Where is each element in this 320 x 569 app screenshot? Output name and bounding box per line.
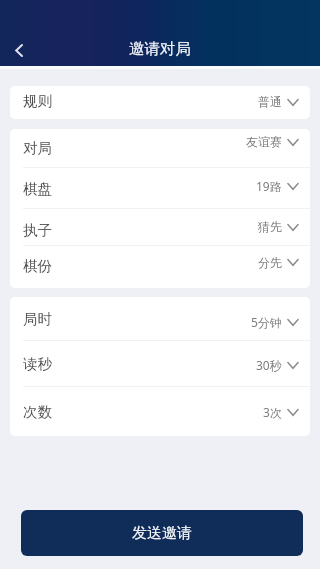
staticText: 棋份 — [23, 257, 52, 275]
staticText: 棋盘 — [23, 180, 52, 198]
button[interactable]: 棋份 — [10, 246, 310, 288]
staticText: 读秒 — [23, 355, 52, 373]
button[interactable]: Back — [2, 33, 36, 67]
staticText: 分先 — [258, 255, 282, 270]
staticText: 猜先 — [258, 219, 282, 234]
staticText: 30秒 — [256, 357, 282, 373]
button[interactable]: 次数 — [10, 387, 310, 436]
staticText: 局时 — [23, 310, 52, 328]
staticText: 5分钟 — [251, 314, 282, 330]
button[interactable]: 棋盘 — [10, 168, 310, 209]
staticText: 3次 — [263, 404, 282, 420]
button[interactable]: 读秒 — [10, 341, 310, 387]
staticText: 普通 — [258, 94, 282, 109]
staticText: 19路 — [256, 178, 282, 194]
staticText: 对局 — [23, 139, 52, 157]
button[interactable]: 规则 — [10, 86, 310, 119]
staticText: 发送邀请 — [132, 524, 192, 543]
button[interactable]: 局时 — [10, 297, 310, 341]
staticText: 邀请对局 — [129, 39, 191, 59]
staticText: 次数 — [23, 403, 52, 421]
button[interactable]: 对局 — [10, 129, 310, 168]
staticText: 友谊赛 — [246, 134, 282, 149]
staticText: 规则 — [23, 92, 52, 110]
button[interactable]: 执子 — [10, 209, 310, 246]
button[interactable]: 发送邀请 — [21, 510, 303, 556]
staticText: 执子 — [23, 221, 52, 239]
